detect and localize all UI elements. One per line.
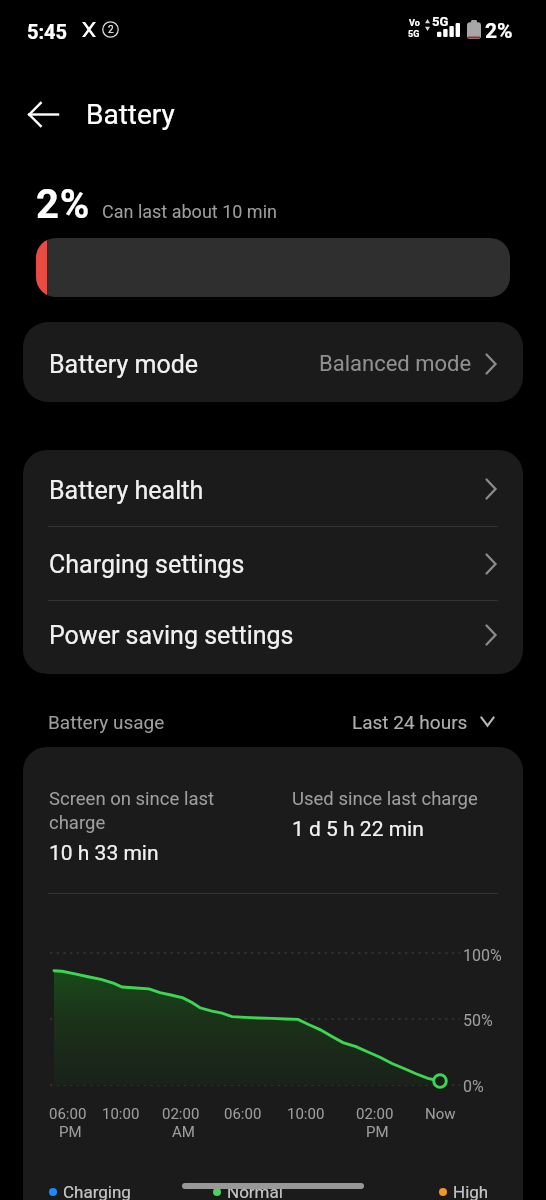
button[interactable]: High (439, 1177, 489, 1200)
staticText: 02:00 (356, 1105, 394, 1123)
button[interactable]: Charging (49, 1177, 131, 1200)
staticText: Normal (227, 1182, 283, 1200)
staticText: Last 24 hours (352, 711, 468, 733)
button[interactable]: Normal (213, 1177, 283, 1200)
button[interactable]: Last 24 hours (352, 710, 495, 732)
staticText: Battery usage (48, 711, 165, 733)
button[interactable]: Power saving settings (23, 601, 523, 674)
staticText: 02:00 (162, 1105, 200, 1123)
staticText: Battery mode (49, 350, 199, 379)
staticText: 06:00 (224, 1105, 262, 1123)
staticText: 5G (408, 29, 420, 40)
staticText: 06:00 (49, 1105, 87, 1123)
staticText: Charging settings (49, 550, 245, 579)
staticText: Screen on since last charge (49, 788, 249, 834)
staticText: 2% (36, 181, 91, 228)
button[interactable]: Charging settings (23, 527, 523, 600)
staticText: 2 (108, 24, 114, 36)
staticText: 10 h 33 min (49, 841, 159, 866)
staticText: PM (59, 1123, 82, 1141)
staticText: Used since last charge (292, 788, 478, 810)
staticText: 1 d 5 h 22 min (292, 817, 424, 842)
staticText: 2% (485, 19, 513, 44)
staticText: Battery (86, 98, 175, 131)
staticText: Charging (63, 1182, 131, 1200)
staticText: Vo (409, 18, 420, 29)
staticText: AM (172, 1123, 195, 1141)
staticText: 5:45 (27, 20, 68, 43)
staticText: 5G (432, 14, 449, 29)
staticText: 10:00 (102, 1105, 140, 1123)
staticText: PM (366, 1123, 389, 1141)
button[interactable]: Back (21, 92, 65, 136)
button[interactable]: Battery mode (23, 322, 523, 402)
staticText: High (453, 1182, 489, 1200)
staticText: Power saving settings (49, 621, 294, 650)
staticText: Balanced mode (319, 351, 472, 377)
staticText: 100% (463, 946, 502, 965)
staticText: 0% (463, 1077, 484, 1096)
button[interactable]: Battery health (23, 450, 523, 526)
staticText: 50% (463, 1011, 493, 1030)
staticText: Now (425, 1105, 456, 1123)
staticText: Can last about 10 min (102, 201, 277, 222)
staticText: Battery health (49, 476, 204, 505)
staticText: 10:00 (287, 1105, 325, 1123)
